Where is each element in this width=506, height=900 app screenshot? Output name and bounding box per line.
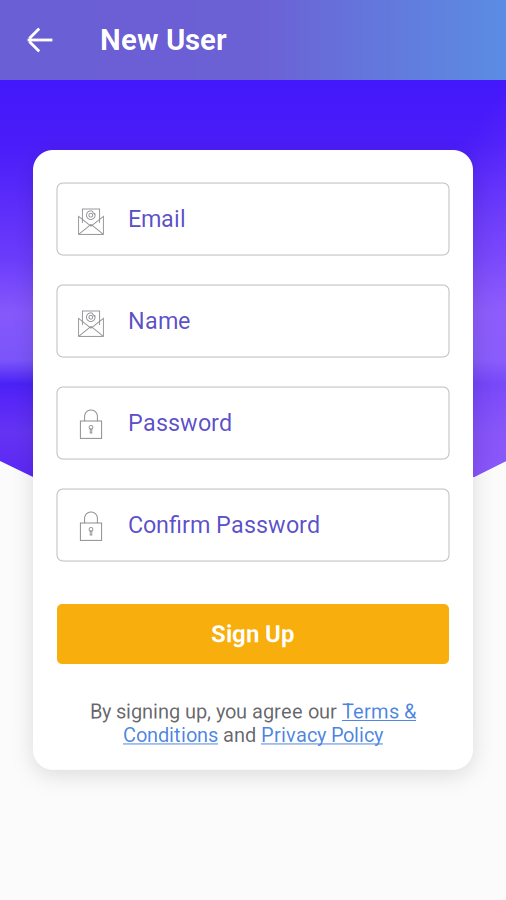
button[interactable]: Email: [57, 183, 449, 255]
staticText: and: [218, 723, 261, 747]
staticText: Sign Up: [211, 620, 295, 648]
staticText: Email: [128, 205, 186, 233]
staticText: Confirm Password: [128, 511, 320, 539]
staticText: Terms &: [342, 700, 416, 723]
button[interactable]: Password: [57, 387, 449, 459]
button[interactable]: Back: [17, 17, 63, 63]
staticText: New User: [100, 23, 227, 57]
staticText: Conditions: [123, 723, 218, 747]
button[interactable]: Name: [57, 285, 449, 357]
button[interactable]: Sign Up: [57, 604, 449, 664]
button[interactable]: Privacy Policy: [261, 723, 383, 747]
staticText: Name: [128, 307, 190, 335]
staticText: By signing up, you agree our: [90, 700, 342, 723]
staticText: Password: [128, 409, 232, 437]
button[interactable]: Terms &: [342, 700, 416, 723]
button[interactable]: Confirm Password: [57, 489, 449, 561]
button[interactable]: Conditions: [123, 723, 218, 747]
staticText: Privacy Policy: [261, 723, 383, 747]
